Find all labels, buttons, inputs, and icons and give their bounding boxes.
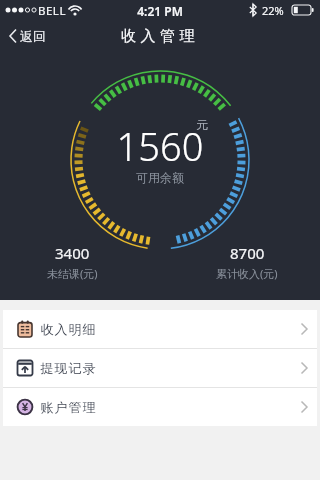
button[interactable]: 返回 xyxy=(8,28,46,44)
staticText: 可用余额 xyxy=(0,170,320,185)
button[interactable]: 账户管理 xyxy=(3,388,317,426)
staticText: 收入管理 xyxy=(0,27,320,46)
staticText: BELL xyxy=(38,3,66,19)
staticText: 累计收入(元) xyxy=(216,266,278,281)
button[interactable]: 收入明细 xyxy=(3,310,317,348)
staticText: 未结课(元) xyxy=(47,266,98,281)
staticText: 8700 xyxy=(230,243,265,263)
staticText: 元 xyxy=(196,117,208,132)
staticText: 1560 xyxy=(0,120,320,172)
staticText: 3400 xyxy=(55,243,90,263)
button[interactable]: 提现记录 xyxy=(3,349,317,387)
staticText: 22% xyxy=(262,3,284,18)
staticText: 4:21 PM xyxy=(0,3,320,19)
staticText: 账户管理 xyxy=(40,399,96,415)
staticText: 提现记录 xyxy=(40,360,96,376)
staticText: 收入明细 xyxy=(40,321,96,337)
staticText: 返回 xyxy=(20,28,46,44)
